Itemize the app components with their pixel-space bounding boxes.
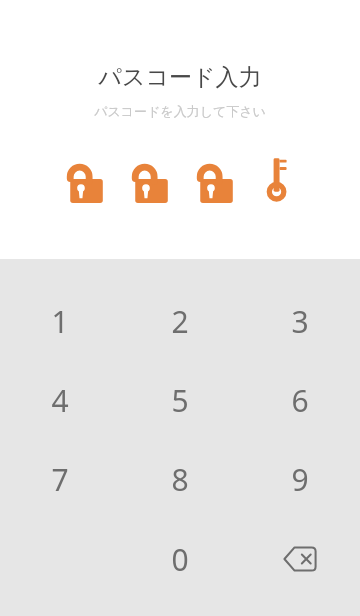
- button[interactable]: 1: [0, 282, 120, 361]
- staticText: 3: [291, 301, 309, 342]
- button[interactable]: 6: [240, 361, 360, 440]
- staticText: 1: [51, 301, 69, 342]
- button[interactable]: 4: [0, 361, 120, 440]
- button[interactable]: 7: [0, 440, 120, 519]
- button[interactable]: Backspace: [240, 519, 360, 599]
- staticText: 6: [291, 380, 309, 421]
- staticText: パスコードを入力して下さい: [94, 103, 266, 119]
- button[interactable]: 0: [120, 519, 240, 599]
- staticText: 8: [171, 459, 189, 500]
- staticText: 9: [291, 459, 309, 500]
- staticText: 4: [51, 380, 69, 421]
- staticText: 5: [171, 380, 189, 421]
- staticText: 0: [171, 539, 189, 580]
- button[interactable]: 3: [240, 282, 360, 361]
- staticText: パスコード入力: [98, 63, 262, 92]
- staticText: 2: [171, 301, 189, 342]
- button[interactable]: 5: [120, 361, 240, 440]
- button[interactable]: 2: [120, 282, 240, 361]
- button[interactable]: 9: [240, 440, 360, 519]
- staticText: 7: [51, 459, 69, 500]
- button[interactable]: 8: [120, 440, 240, 519]
